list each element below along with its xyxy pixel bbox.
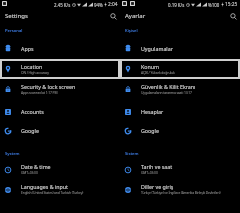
button[interactable]: Hesaplar: [120, 102, 240, 121]
staticText: English (United States) and Turkish (Tur…: [21, 190, 84, 195]
staticText: Ayarlar: [125, 12, 146, 20]
staticText: Apps scanned at 1:17 PM: [21, 90, 58, 95]
staticText: Konum: [141, 63, 159, 70]
staticText: 94%: [94, 2, 103, 8]
button[interactable]: Location: [0, 59, 120, 79]
staticText: Google: [141, 127, 159, 134]
button[interactable]: Tarih ve saat: [120, 160, 240, 179]
staticText: Türkçe (Türkiye) ve İngilizce (Amerika B…: [141, 190, 221, 195]
button[interactable]: Diller ve giriş: [120, 180, 240, 199]
button[interactable]: Güvenlik & Kilit Ekranı: [120, 79, 240, 99]
staticText: 0.19 K/s: [168, 2, 185, 8]
button[interactable]: Settings: [0, 9, 120, 24]
staticText: Tarih ve saat: [141, 163, 173, 170]
staticText: GMT+03:00: [141, 170, 158, 175]
staticText: System: [5, 151, 20, 157]
staticText: Accounts: [21, 108, 44, 115]
staticText: Settings: [5, 12, 28, 20]
staticText: ON / High accuracy: [21, 70, 49, 75]
button[interactable]: Search: [228, 11, 239, 22]
staticText: GMT+03:00: [21, 170, 38, 175]
button[interactable]: Konum: [120, 59, 240, 79]
staticText: 15:25: [225, 1, 238, 8]
staticText: %100: [208, 2, 220, 8]
staticText: Uygulamalar: [141, 45, 173, 52]
button[interactable]: Date & time: [0, 160, 120, 179]
staticText: Location: [21, 63, 43, 70]
button[interactable]: Google: [120, 121, 240, 140]
staticText: Sistem: [125, 151, 139, 157]
staticText: Hesaplar: [141, 108, 164, 115]
staticText: Languages & input: [21, 183, 69, 190]
button[interactable]: Search: [108, 11, 119, 22]
button[interactable]: Apps: [0, 38, 120, 58]
staticText: AÇIK / Yüksek doğruluk: [141, 70, 175, 75]
staticText: Apps: [21, 45, 34, 52]
staticText: Kişisel: [125, 28, 138, 34]
button[interactable]: Ayarlar: [120, 9, 240, 24]
button[interactable]: Security & lock screen: [0, 79, 120, 99]
staticText: Google: [21, 127, 39, 134]
staticText: 2.45 K/s: [54, 2, 71, 8]
staticText: 2:04: [108, 1, 118, 8]
staticText: Date & time: [21, 163, 51, 170]
staticText: Personal: [5, 28, 23, 34]
button[interactable]: Uygulamalar: [120, 38, 240, 58]
button[interactable]: Languages & input: [0, 180, 120, 199]
staticText: Uygulamaların taranma saati 13:17: [141, 90, 192, 95]
staticText: Diller ve giriş: [141, 183, 174, 190]
button[interactable]: Google: [0, 121, 120, 140]
staticText: Security & lock screen: [21, 83, 76, 90]
staticText: Güvenlik & Kilit Ekranı: [141, 83, 196, 90]
button[interactable]: Accounts: [0, 102, 120, 121]
